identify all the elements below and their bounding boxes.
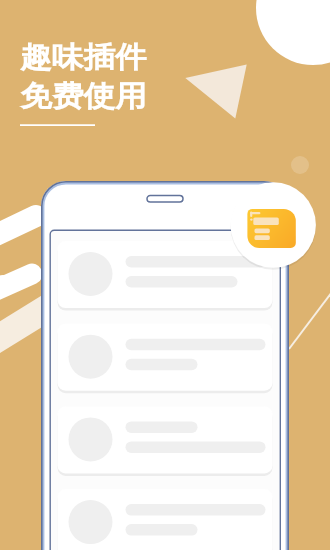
- staticText: 趣味插件: [20, 39, 147, 75]
- staticText: 免费使用: [20, 79, 147, 115]
